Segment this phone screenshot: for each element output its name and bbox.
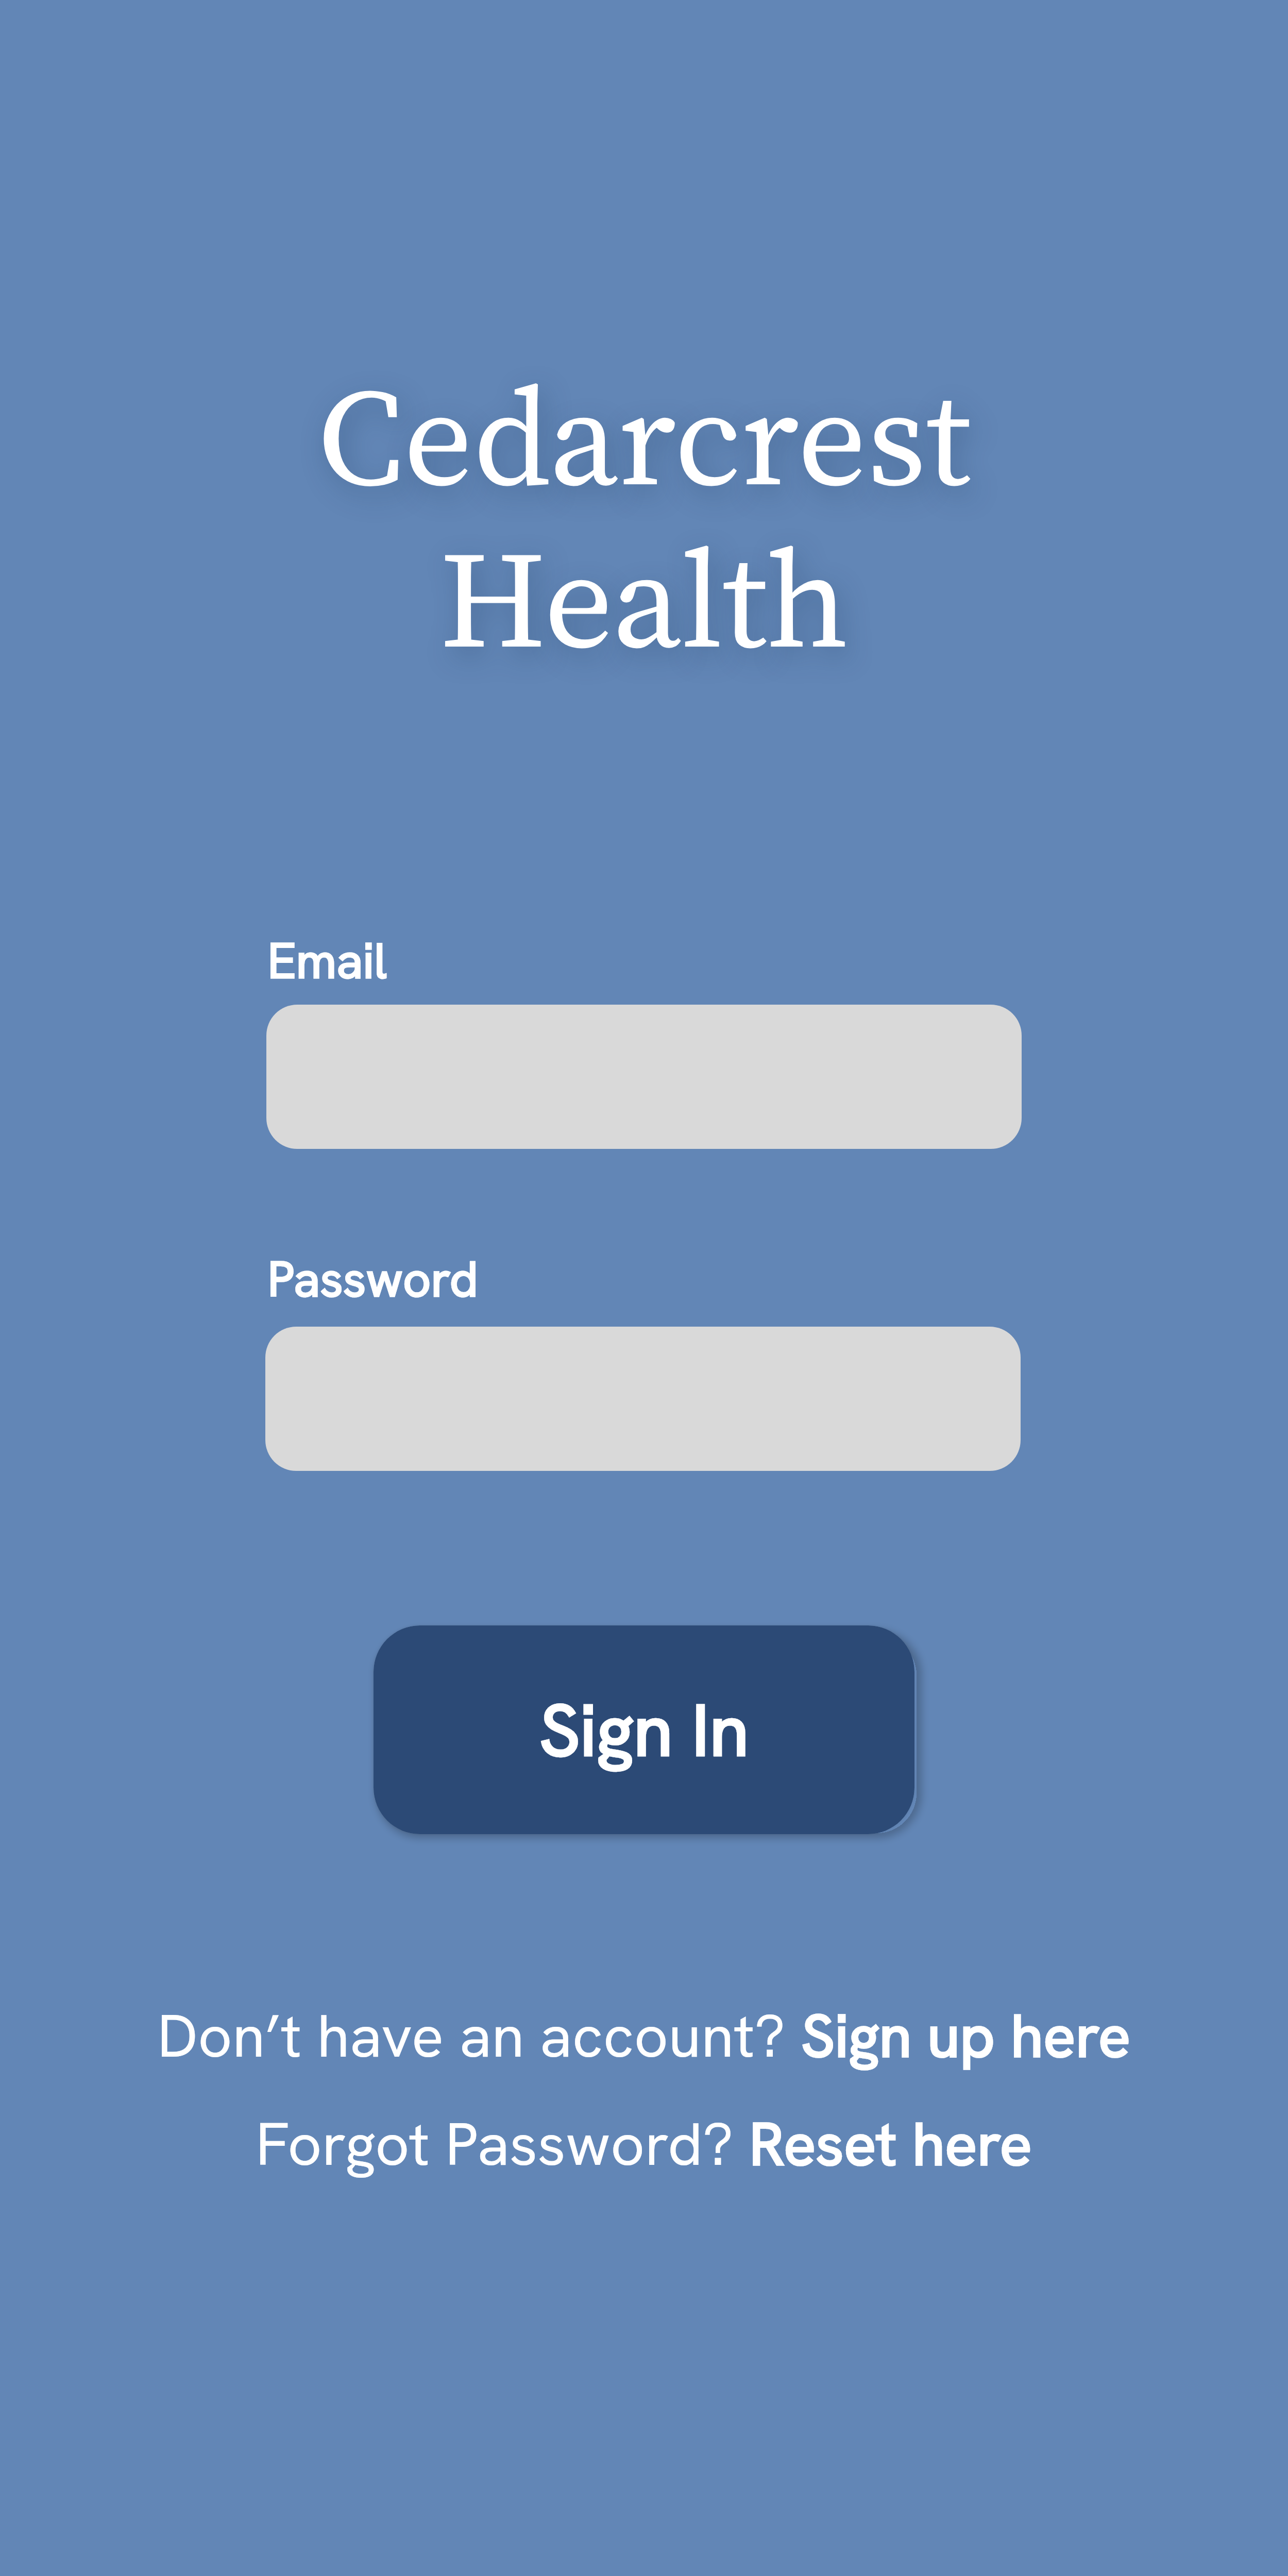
staticText: Password <box>267 1247 479 1311</box>
staticText: Cedarcrest Health <box>0 343 1288 692</box>
button[interactable]: Sign In <box>374 1625 914 1834</box>
button[interactable] <box>266 1005 1022 1149</box>
button[interactable] <box>265 1327 1021 1471</box>
staticText: Sign In <box>539 1683 749 1777</box>
button[interactable]: Reset here <box>749 2105 1032 2183</box>
button[interactable]: Sign up here <box>801 1997 1131 2075</box>
staticText: Don’t have an account? <box>157 1997 801 2075</box>
staticText: Forgot Password? <box>256 2105 749 2183</box>
staticText: Email <box>267 929 387 993</box>
